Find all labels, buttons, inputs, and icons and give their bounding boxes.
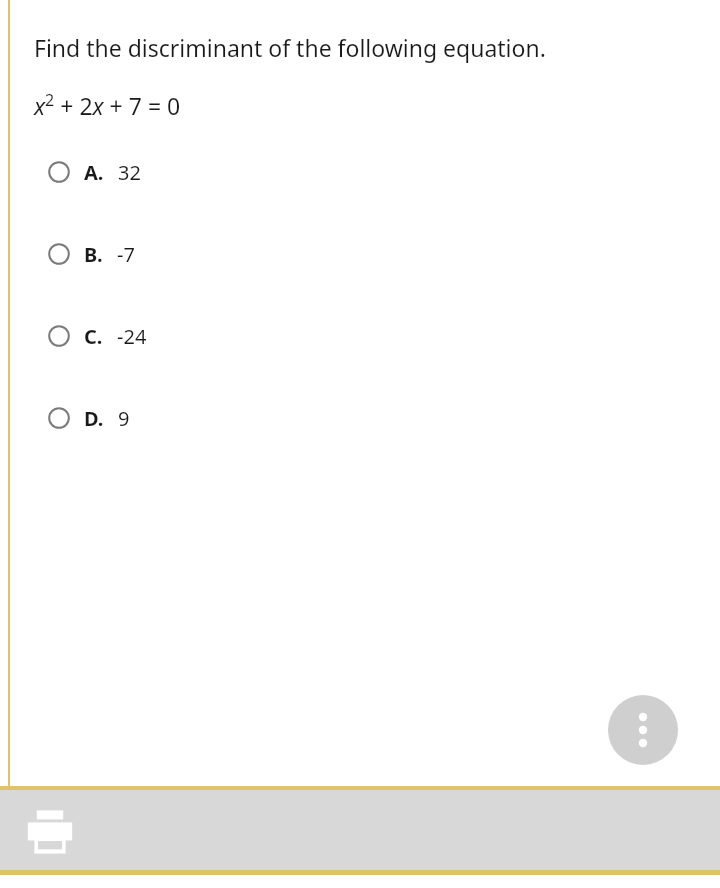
- staticText: 9: [118, 405, 130, 432]
- staticText: D.: [84, 405, 104, 432]
- staticText: x2 + 2x + 7 = 0: [34, 89, 181, 121]
- staticText: 32: [118, 159, 141, 186]
- staticText: -24: [117, 323, 147, 350]
- button[interactable]: A.: [0, 155, 720, 189]
- button[interactable]: Print: [20, 802, 80, 862]
- staticText: -7: [117, 241, 135, 268]
- staticText: C.: [84, 323, 103, 350]
- staticText: B.: [84, 241, 103, 268]
- button[interactable]: D.: [0, 401, 720, 435]
- button[interactable]: B.: [0, 237, 720, 271]
- staticText: Find the discriminant of the following e…: [34, 32, 546, 63]
- button[interactable]: C.: [0, 319, 720, 353]
- staticText: A.: [84, 159, 104, 186]
- button[interactable]: More options: [608, 695, 678, 765]
